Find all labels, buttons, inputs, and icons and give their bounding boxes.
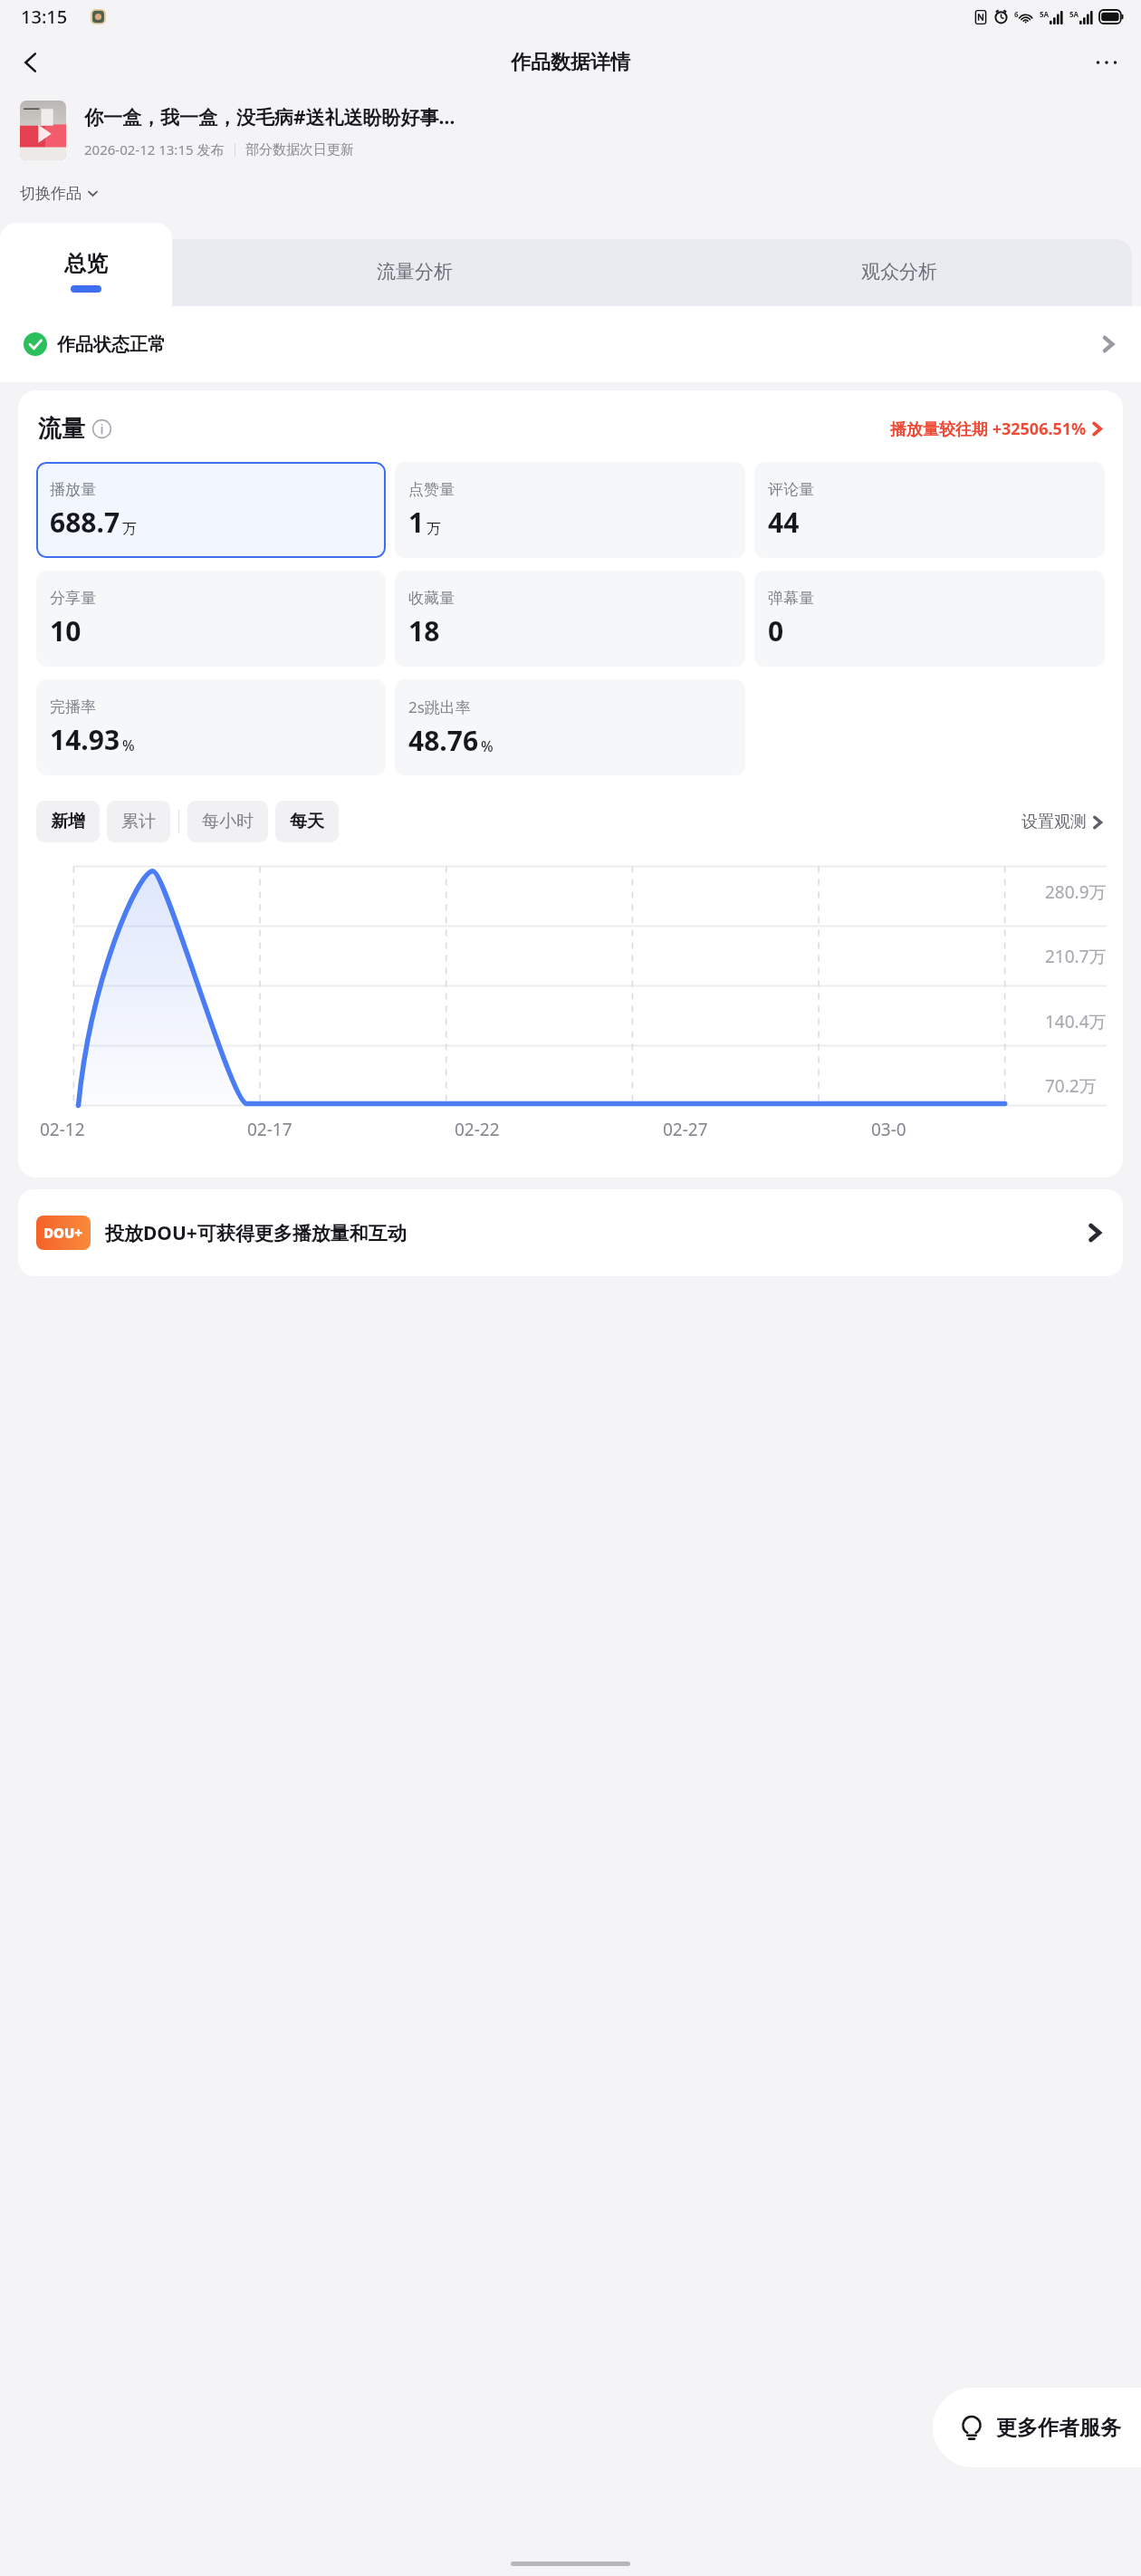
- staticText: 播放量较往期 +32506.51%: [890, 418, 1087, 440]
- staticText: 280.9万: [1045, 880, 1107, 904]
- button[interactable]: 播放量较往期 +32506.51%: [890, 418, 1105, 440]
- staticText: 18: [408, 612, 440, 649]
- button[interactable]: 分享量: [36, 571, 386, 667]
- button[interactable]: 总览: [0, 223, 172, 306]
- staticText: 每小时: [202, 811, 254, 832]
- staticText: 分享量: [50, 589, 96, 608]
- staticText: %: [481, 736, 494, 756]
- button[interactable]: 作品状态正常: [0, 306, 1141, 382]
- staticText: 设置观测: [1021, 812, 1087, 832]
- staticText: 万: [122, 520, 137, 538]
- staticText: 累计: [121, 811, 156, 832]
- button[interactable]: 更多作者服务: [933, 2388, 1141, 2467]
- button[interactable]: 累计: [107, 801, 170, 842]
- staticText: %: [122, 735, 135, 755]
- staticText: 总览: [64, 250, 108, 277]
- staticText: 02-22: [455, 1118, 500, 1141]
- button[interactable]: 完播率: [36, 679, 386, 775]
- button[interactable]: 播放量: [36, 462, 386, 558]
- staticText: 70.2万: [1045, 1074, 1097, 1098]
- staticText: 0: [768, 612, 784, 649]
- staticText: 02-12: [40, 1118, 85, 1141]
- staticText: 02-17: [247, 1118, 292, 1141]
- button[interactable]: Back: [7, 39, 54, 86]
- button[interactable]: 弹幕量: [754, 571, 1105, 667]
- button[interactable]: 切换作品: [20, 184, 100, 203]
- staticText: 2026-02-12 13:15 发布: [84, 140, 225, 159]
- staticText: 切换作品: [20, 184, 81, 203]
- staticText: 作品状态正常: [57, 333, 166, 356]
- staticText: 播放量: [50, 480, 96, 499]
- button[interactable]: DOU+: [36, 1189, 1105, 1276]
- staticText: 流量: [38, 414, 85, 444]
- button[interactable]: More options: [1083, 39, 1130, 86]
- staticText: 作品数据详情: [511, 50, 630, 75]
- staticText: 观众分析: [861, 260, 937, 284]
- staticText: 完播率: [50, 697, 96, 716]
- staticText: 收藏量: [408, 589, 455, 608]
- staticText: 每天: [290, 811, 324, 832]
- button[interactable]: 流量分析: [172, 223, 657, 306]
- button[interactable]: 收藏量: [395, 571, 745, 667]
- staticText: 03-0: [871, 1118, 906, 1141]
- staticText: 弹幕量: [768, 589, 814, 608]
- staticText: 部分数据次日更新: [245, 141, 354, 159]
- staticText: 万: [427, 520, 441, 538]
- staticText: 210.7万: [1045, 945, 1107, 968]
- staticText: 688.7: [50, 504, 120, 541]
- staticText: 13:15: [21, 5, 68, 29]
- staticText: 更多作者服务: [996, 2415, 1121, 2441]
- button[interactable]: 点赞量: [395, 462, 745, 558]
- staticText: 新增: [51, 811, 85, 832]
- staticText: 评论量: [768, 480, 814, 499]
- staticText: 投放DOU+可获得更多播放量和互动: [105, 1220, 407, 1246]
- staticText: 14.93: [50, 721, 120, 758]
- staticText: 5A: [1040, 9, 1050, 19]
- button[interactable]: 评论量: [754, 462, 1105, 558]
- button[interactable]: 每天: [275, 801, 339, 842]
- staticText: 1: [408, 504, 425, 541]
- button[interactable]: 你一盒，我一盒，没毛病#送礼送盼盼好事…: [20, 101, 1125, 160]
- button[interactable]: 每小时: [187, 801, 268, 842]
- staticText: 02-27: [663, 1118, 708, 1141]
- staticText: 流量分析: [377, 260, 453, 284]
- button[interactable]: 观众分析: [657, 223, 1141, 306]
- staticText: 48.76: [408, 722, 479, 759]
- staticText: 5A: [1069, 9, 1079, 19]
- button[interactable]: 2s跳出率: [395, 679, 745, 775]
- staticText: 6: [1014, 9, 1019, 19]
- button[interactable]: 新增: [36, 801, 100, 842]
- staticText: 你一盒，我一盒，没毛病#送礼送盼盼好事…: [84, 104, 455, 130]
- staticText: 140.4万: [1045, 1010, 1107, 1033]
- staticText: DOU+: [43, 1224, 83, 1242]
- button[interactable]: 设置观测: [1021, 812, 1105, 832]
- staticText: 点赞量: [408, 480, 455, 499]
- staticText: 2s跳出率: [408, 697, 471, 717]
- staticText: 10: [50, 612, 81, 649]
- staticText: 44: [768, 504, 800, 541]
